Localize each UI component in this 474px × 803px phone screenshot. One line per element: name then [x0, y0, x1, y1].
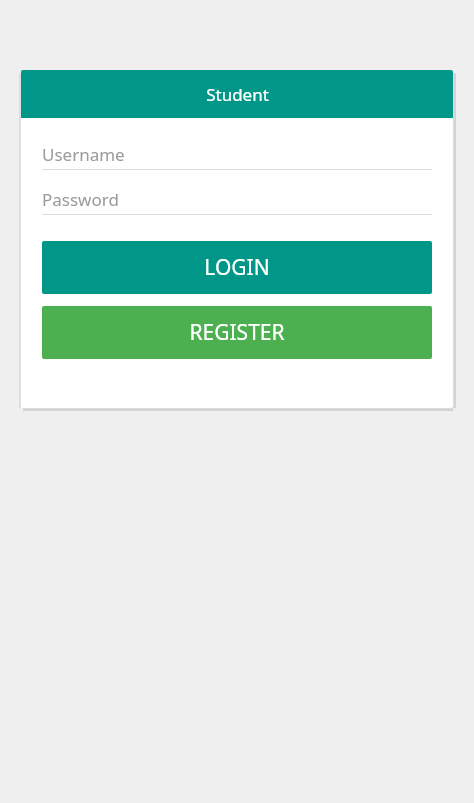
- button[interactable]: LOGIN: [42, 241, 432, 294]
- button[interactable]: Username: [42, 139, 432, 170]
- staticText: REGISTER: [189, 318, 285, 347]
- button[interactable]: REGISTER: [42, 306, 432, 359]
- button[interactable]: Password: [42, 184, 432, 215]
- staticText: Password: [42, 188, 119, 211]
- staticText: LOGIN: [204, 253, 270, 282]
- staticText: Student: [206, 83, 269, 106]
- staticText: Username: [42, 143, 125, 166]
